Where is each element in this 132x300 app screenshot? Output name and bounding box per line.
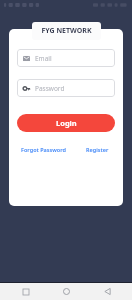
staticText: FYG NETWORK [41, 26, 92, 36]
button[interactable]: Email field [17, 49, 115, 67]
staticText: Email [35, 54, 52, 63]
button[interactable]: Home [51, 283, 81, 300]
staticText: Login [56, 118, 77, 128]
button[interactable]: Login [17, 114, 115, 132]
staticText: Password [35, 84, 65, 93]
button[interactable]: Back [92, 283, 122, 300]
button[interactable]: FYG NETWORK [32, 22, 101, 40]
button[interactable]: Password field [17, 79, 115, 97]
staticText: Forgot Password [21, 146, 66, 153]
button[interactable]: Recent apps [11, 283, 41, 300]
staticText: Register [86, 146, 109, 153]
button[interactable]: Forgot Password [21, 146, 66, 153]
button[interactable]: Register [86, 146, 109, 153]
